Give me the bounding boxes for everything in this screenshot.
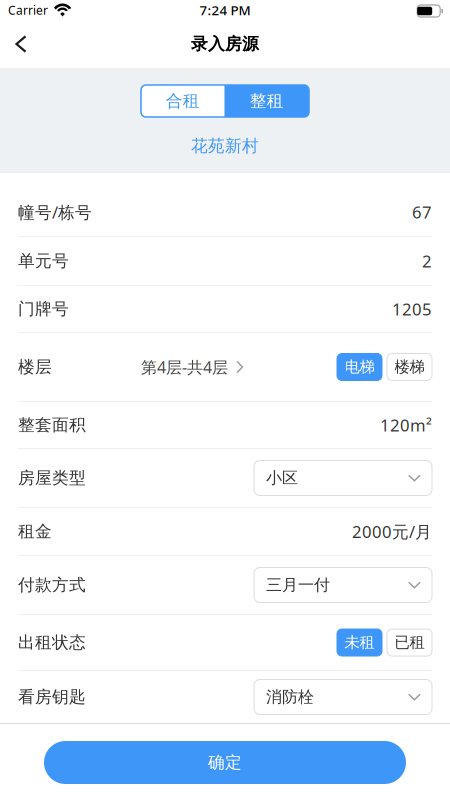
staticText: 出租状态 [18, 632, 86, 653]
button[interactable]: 小区 [254, 460, 432, 495]
staticText: 2 [422, 250, 432, 272]
staticText: 录入房源 [191, 33, 259, 54]
staticText: 整套面积 [18, 414, 86, 435]
staticText: 67 [412, 201, 432, 223]
staticText: 房屋类型 [18, 467, 86, 488]
staticText: 2000元/月 [352, 520, 432, 543]
staticText: 第4层-共4层 [141, 356, 228, 378]
staticText: Carrier [8, 2, 48, 18]
button[interactable]: 消防栓 [254, 679, 432, 714]
staticText: 小区 [266, 468, 298, 488]
staticText: 整租 [250, 90, 284, 111]
staticText: 120m² [380, 414, 432, 436]
staticText: 三月一付 [266, 575, 330, 595]
button[interactable]: 整租 [224, 85, 309, 117]
button[interactable]: 确定 [44, 741, 406, 784]
staticText: 1205 [392, 298, 432, 320]
staticText: 花苑新村 [191, 135, 259, 156]
button[interactable]: 三月一付 [254, 567, 432, 602]
staticText: 消防栓 [266, 687, 314, 707]
button[interactable]: 已租 [387, 629, 432, 656]
button[interactable]: 合租 [141, 85, 224, 117]
staticText: 楼层 [18, 356, 52, 377]
staticText: 已租 [394, 633, 424, 652]
staticText: 租金 [18, 521, 52, 542]
staticText: 确定 [208, 752, 242, 773]
staticText: 幢号/栋号 [18, 201, 92, 223]
staticText: 7:24 PM [199, 1, 250, 19]
staticText: 合租 [166, 90, 200, 111]
staticText: 看房钥匙 [18, 686, 86, 707]
button[interactable]: 楼梯 [387, 353, 432, 380]
button[interactable]: 花苑新村 [191, 135, 259, 157]
staticText: 未租 [344, 633, 374, 652]
staticText: 电梯 [344, 357, 374, 377]
staticText: 付款方式 [18, 574, 86, 595]
staticText: 门牌号 [18, 298, 69, 319]
staticText: 楼梯 [394, 357, 424, 377]
button[interactable]: Back [1, 24, 41, 64]
staticText: 单元号 [18, 250, 69, 271]
button[interactable]: 电梯 [337, 353, 382, 380]
button[interactable]: 未租 [337, 629, 382, 656]
button[interactable]: 第4层-共4层 [141, 354, 243, 380]
